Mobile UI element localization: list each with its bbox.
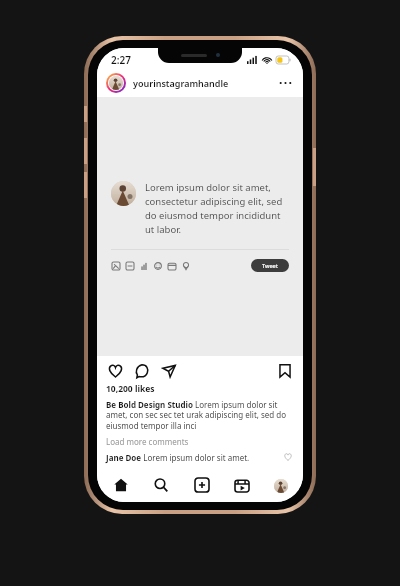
- button[interactable]: Profile: [272, 477, 289, 494]
- button[interactable]: Reels: [232, 475, 252, 495]
- button[interactable]: yourinstagramhandle: [133, 77, 276, 89]
- staticText: Jane Doe Lorem ipsum dolor sit amet.: [106, 452, 282, 463]
- button[interactable]: Comment: [133, 362, 151, 380]
- button[interactable]: Load more comments: [106, 436, 189, 447]
- button[interactable]: Add emoji: [153, 261, 162, 270]
- button[interactable]: Like comment: [282, 451, 294, 463]
- button[interactable]: Add photo: [111, 261, 120, 270]
- button[interactable]: 10,200 likes: [106, 383, 155, 395]
- button[interactable]: Search: [151, 475, 171, 495]
- button[interactable]: Save: [276, 362, 294, 380]
- button[interactable]: Share: [160, 362, 178, 380]
- staticText: Be Bold Design Studio Lorem ipsum dolor …: [106, 399, 294, 432]
- button[interactable]: Schedule: [167, 261, 176, 270]
- button[interactable]: Add poll: [139, 261, 148, 270]
- staticText: Lorem ipsum dolor sit amet, consectetur …: [145, 181, 289, 236]
- button[interactable]: Your avatar: [111, 181, 136, 206]
- button[interactable]: Add GIF: [125, 261, 134, 270]
- button[interactable]: Profile photo: [109, 76, 123, 90]
- button[interactable]: Home: [111, 475, 131, 495]
- staticText: Tweet: [262, 262, 278, 269]
- button[interactable]: Tweet: [251, 259, 289, 272]
- staticText: 2:27: [111, 53, 131, 67]
- button[interactable]: Like: [106, 362, 124, 380]
- button[interactable]: New post: [192, 475, 212, 495]
- button[interactable]: More options: [276, 74, 294, 92]
- button[interactable]: Add location: [181, 261, 190, 270]
